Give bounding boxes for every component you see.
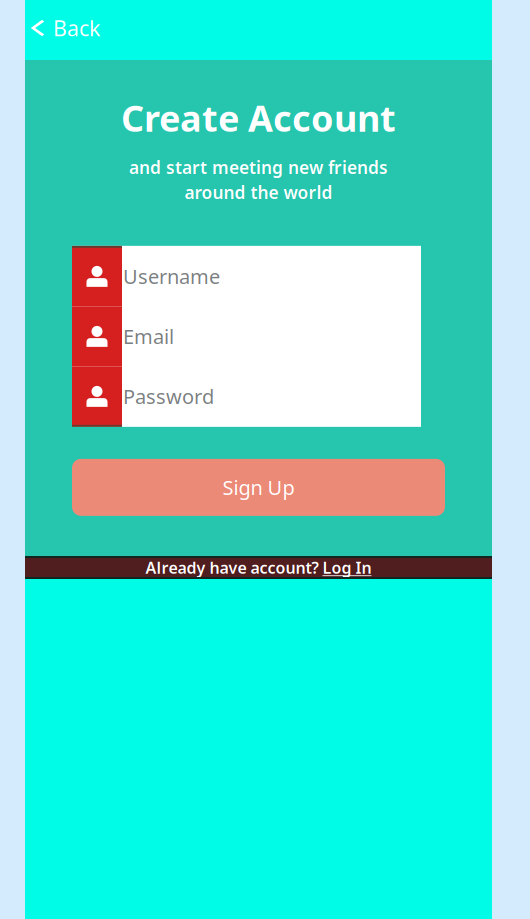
staticText: Password bbox=[123, 383, 214, 410]
staticText: Log In bbox=[322, 557, 371, 578]
button[interactable]: Username bbox=[72, 246, 421, 306]
staticText: Username bbox=[123, 263, 220, 290]
button[interactable]: Sign Up bbox=[72, 459, 445, 516]
staticText: around the world bbox=[184, 181, 332, 204]
staticText: Already have account? bbox=[145, 557, 322, 578]
button[interactable]: Password bbox=[72, 366, 421, 426]
staticText: Back bbox=[53, 14, 100, 42]
button[interactable]: Already have account? bbox=[25, 556, 492, 579]
button[interactable]: Back bbox=[25, 8, 116, 52]
staticText: Create Account bbox=[121, 94, 396, 142]
staticText: Email bbox=[123, 323, 174, 350]
staticText: and start meeting new friends bbox=[129, 156, 388, 179]
staticText: Sign Up bbox=[222, 474, 294, 501]
button[interactable]: Email bbox=[72, 306, 421, 366]
